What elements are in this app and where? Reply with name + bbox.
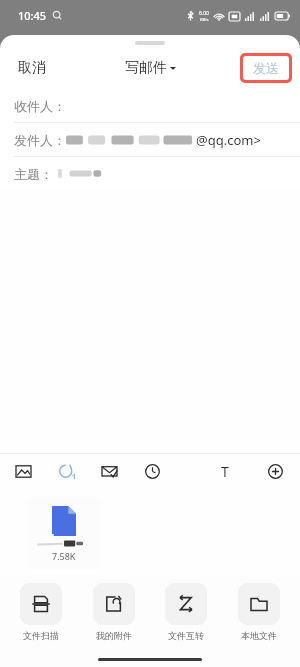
- staticText: 10:45: [18, 8, 47, 23]
- button[interactable]: Insert image: [12, 460, 34, 482]
- staticText: 我的附件: [96, 630, 132, 641]
- button[interactable]: 主题：: [0, 157, 300, 190]
- button[interactable]: Text format: [214, 460, 236, 482]
- button[interactable]: Mail: [98, 460, 120, 482]
- button[interactable]: 发件人：: [0, 123, 300, 156]
- staticText: 取消: [18, 59, 46, 77]
- staticText: 文件互转: [168, 630, 204, 641]
- staticText: KB/s: [200, 17, 209, 22]
- staticText: 7.58K: [52, 550, 76, 562]
- staticText: 发件人：: [14, 132, 66, 148]
- staticText: T: [221, 462, 229, 481]
- staticText: @qq.com>: [196, 131, 261, 149]
- staticText: 1: [72, 472, 77, 482]
- staticText: 收件人：: [14, 98, 66, 114]
- button[interactable]: Attachments: [55, 460, 77, 482]
- staticText: 主题：: [14, 166, 53, 182]
- button[interactable]: 取消: [8, 53, 56, 83]
- button[interactable]: 我的附件: [83, 575, 145, 641]
- staticText: W: [44, 531, 54, 541]
- button[interactable]: 文件互转: [155, 575, 217, 641]
- button[interactable]: 写邮件: [117, 53, 184, 83]
- button[interactable]: More: [264, 460, 286, 482]
- button[interactable]: 发送: [243, 56, 289, 80]
- staticText: 发送: [253, 60, 279, 76]
- staticText: 6.00: [199, 10, 209, 17]
- button[interactable]: 本地文件: [228, 575, 290, 641]
- button[interactable]: 7.58K: [28, 497, 100, 569]
- button[interactable]: 收件人：: [0, 89, 300, 122]
- staticText: 本地文件: [241, 630, 277, 641]
- button[interactable]: Schedule: [141, 460, 163, 482]
- button[interactable]: 文件扫描: [10, 575, 72, 641]
- staticText: 写邮件: [125, 59, 167, 77]
- staticText: 文件扫描: [23, 630, 59, 641]
